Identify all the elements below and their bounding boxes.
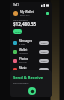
staticText: Wallet (19, 48, 28, 52)
staticText: Music (19, 66, 27, 70)
button[interactable]: Send (13, 29, 22, 34)
staticText: Sync on (19, 61, 27, 64)
staticText: Open (41, 69, 47, 72)
staticText: 9:41 (13, 3, 19, 7)
button[interactable]: Wallet (10, 47, 52, 56)
button[interactable]: Send (28, 87, 36, 95)
staticText: Photos (19, 57, 29, 61)
staticText: $12,480.55 (13, 21, 37, 27)
button[interactable]: Scan (46, 12, 49, 15)
staticText: Send & Receive (13, 75, 44, 80)
staticText: Total balance (13, 18, 28, 21)
staticText: 4 new (19, 43, 26, 46)
staticText: Messages (19, 39, 32, 43)
button[interactable]: Photos (10, 56, 52, 65)
staticText: Fast transfers (13, 81, 29, 84)
staticText: Open (41, 60, 47, 63)
button[interactable]: Messages (10, 38, 52, 47)
staticText: Send (15, 30, 21, 33)
staticText: Open (41, 42, 47, 45)
button[interactable]: Profile (13, 11, 18, 16)
staticText: Updated (19, 52, 28, 55)
button[interactable]: Music (10, 65, 52, 74)
staticText: 0x8f…21c (20, 14, 30, 17)
staticText: Open (41, 51, 47, 54)
staticText: My Wallet (20, 10, 34, 14)
